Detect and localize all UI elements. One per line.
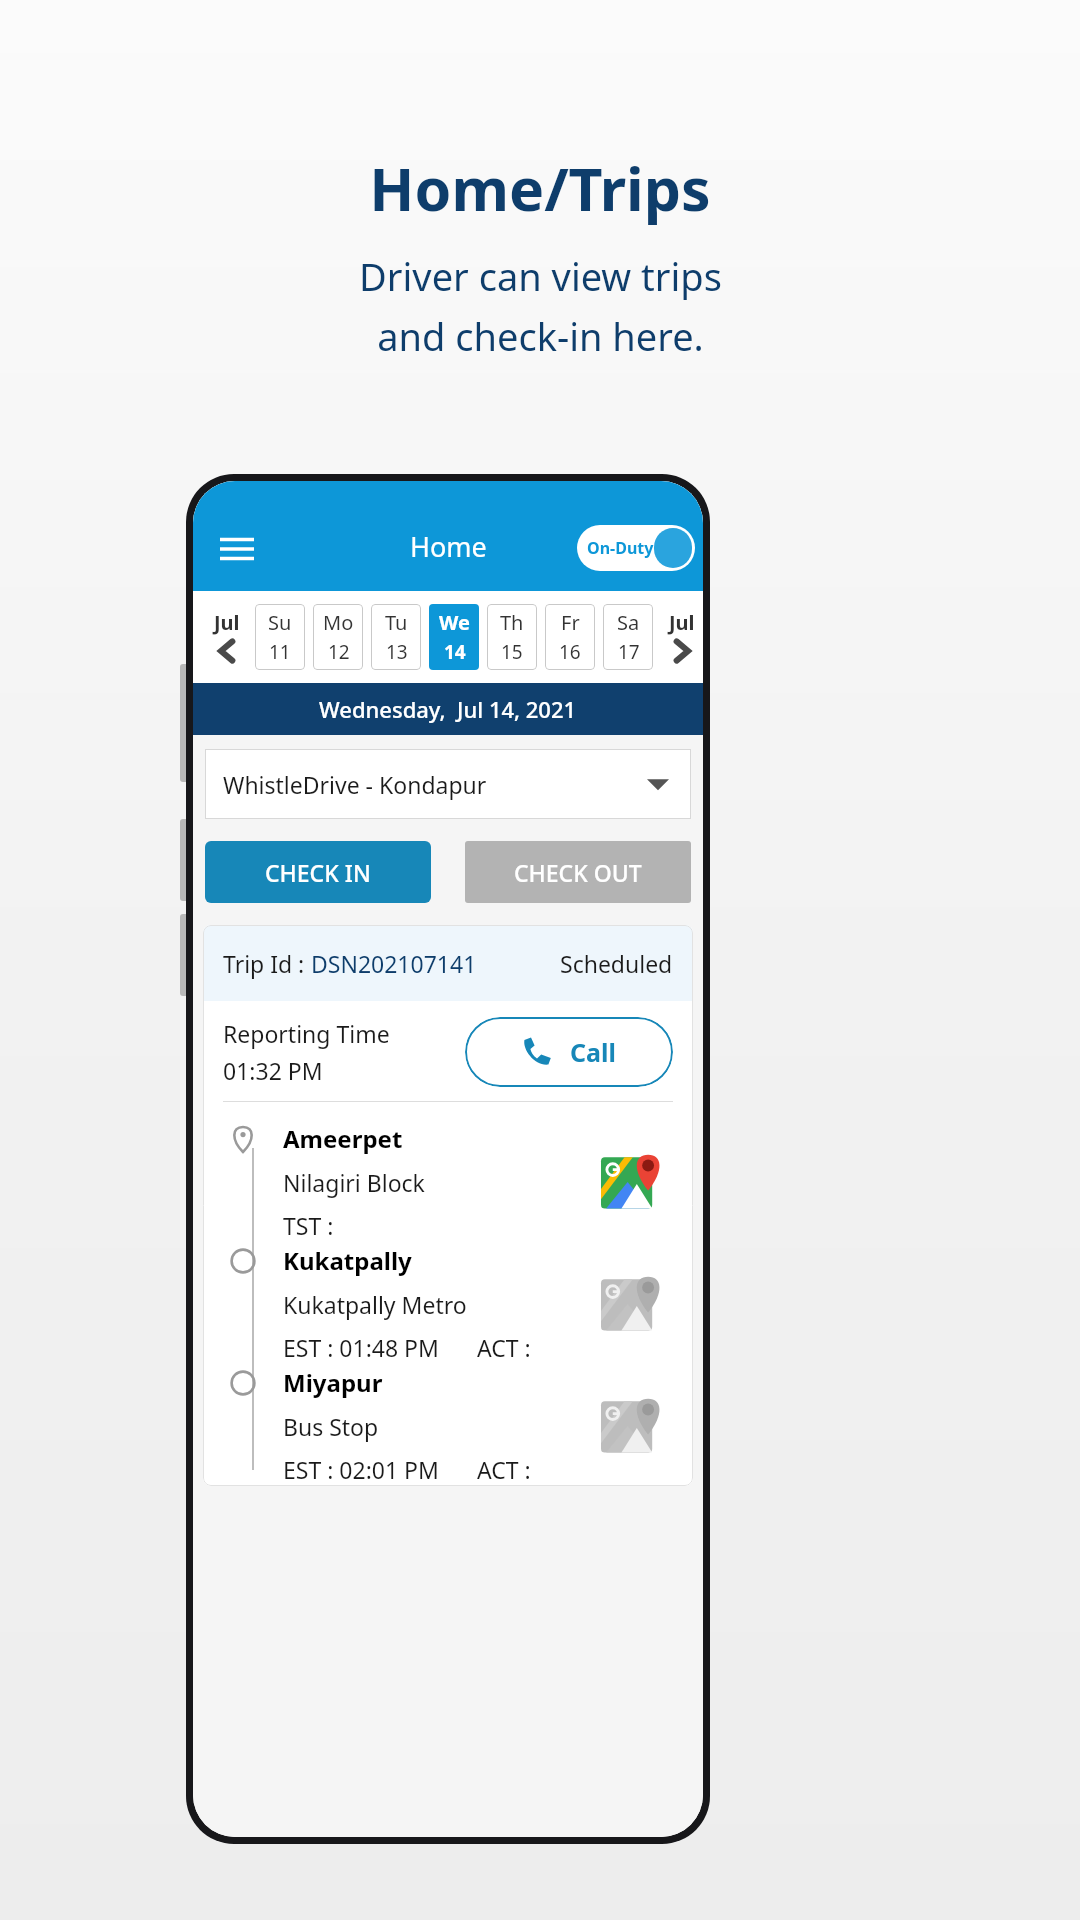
staticText: EST : 02:01 PM <box>283 1454 439 1485</box>
staticText: Scheduled <box>560 948 673 979</box>
button[interactable]: Open in Maps <box>601 1149 665 1213</box>
staticText: Home/Trips <box>369 148 711 228</box>
staticText: Sa <box>617 609 640 636</box>
staticText: 11 <box>269 639 291 665</box>
staticText: CHECK IN <box>265 857 371 888</box>
staticText: Nilagiri Block <box>283 1167 425 1198</box>
staticText: Wednesday, Jul 14, 2021 <box>319 694 577 724</box>
staticText: and check-in here. <box>377 310 704 362</box>
staticText: Call <box>570 1035 616 1069</box>
button[interactable]: Menu <box>211 523 263 575</box>
staticText: Driver can view trips <box>359 250 722 302</box>
button[interactable]: Fr <box>545 604 595 670</box>
staticText: 01:32 PM <box>223 1055 323 1086</box>
staticText: EST : 01:48 PM <box>283 1332 439 1363</box>
button[interactable]: Next week <box>661 609 703 666</box>
staticText: CHECK OUT <box>514 857 642 888</box>
staticText: Jul <box>669 609 695 636</box>
staticText: Tu <box>385 609 408 636</box>
button[interactable]: Call <box>465 1017 673 1087</box>
staticText: Th <box>500 609 524 636</box>
staticText: 14 <box>444 639 466 665</box>
button[interactable]: Su <box>255 604 305 670</box>
staticText: Kukatpally Metro <box>283 1289 467 1320</box>
staticText: Bus Stop <box>283 1411 379 1442</box>
button[interactable]: Kukatpally <box>203 1242 693 1364</box>
staticText: 17 <box>618 639 640 665</box>
staticText: TST : <box>283 1210 334 1241</box>
button[interactable]: WhistleDrive - Kondapur <box>205 749 691 819</box>
button[interactable]: Sa <box>603 604 653 670</box>
staticText: Mo <box>323 609 354 636</box>
staticText: On-Duty <box>587 537 654 559</box>
button[interactable]: Ameerpet <box>203 1120 693 1242</box>
button[interactable]: CHECK OUT <box>465 841 691 903</box>
staticText: ACT : <box>477 1454 531 1485</box>
staticText: Fr <box>561 609 580 636</box>
staticText: Su <box>268 609 292 636</box>
staticText: Jul <box>214 609 240 636</box>
button[interactable]: On-Duty <box>577 525 695 571</box>
staticText: Ameerpet <box>283 1122 403 1155</box>
staticText: Miyapur <box>283 1366 383 1399</box>
staticText: Home <box>410 528 487 565</box>
staticText: 16 <box>559 639 581 665</box>
staticText: Trip Id : <box>223 948 311 979</box>
staticText: WhistleDrive - Kondapur <box>223 769 487 800</box>
staticText: 15 <box>501 639 523 665</box>
button[interactable]: We <box>429 604 479 670</box>
button[interactable]: Tu <box>371 604 421 670</box>
button[interactable]: Previous week <box>203 609 251 666</box>
button[interactable]: Open in Maps <box>601 1271 665 1335</box>
staticText: We <box>439 609 470 636</box>
button[interactable]: CHECK IN <box>205 841 431 903</box>
staticText: DSN202107141 <box>311 948 477 979</box>
staticText: Kukatpally <box>283 1244 412 1277</box>
button[interactable]: Th <box>487 604 537 670</box>
staticText: 12 <box>328 639 350 665</box>
staticText: Reporting Time <box>223 1018 390 1049</box>
staticText: 13 <box>386 639 408 665</box>
button[interactable]: Open in Maps <box>601 1393 665 1457</box>
button[interactable]: Mo <box>313 604 363 670</box>
button[interactable]: Miyapur <box>203 1364 693 1486</box>
staticText: ACT : <box>477 1332 531 1363</box>
